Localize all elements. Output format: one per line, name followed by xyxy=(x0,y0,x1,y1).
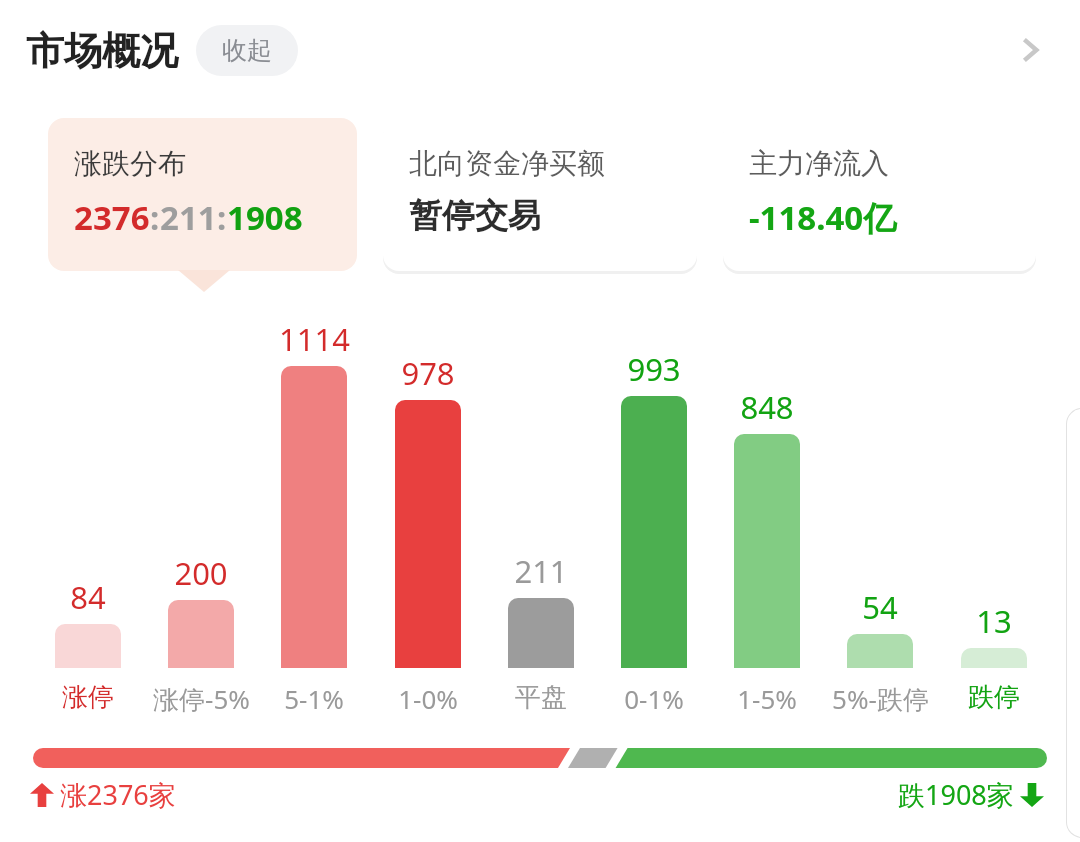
staticText: 1908 xyxy=(227,195,303,240)
button[interactable] xyxy=(847,634,913,668)
button[interactable]: 北向资金净买额 xyxy=(383,118,697,271)
staticText: 涨2376家 xyxy=(60,776,176,813)
staticText: 211 xyxy=(160,195,217,240)
staticText: 5%-跌停 xyxy=(832,681,929,717)
staticText: 主力净流入 xyxy=(749,146,889,181)
staticText: 跌1908家 xyxy=(898,776,1014,813)
button[interactable] xyxy=(621,396,687,668)
staticText: : xyxy=(217,195,227,240)
staticText: : xyxy=(150,195,160,240)
staticText: 收起 xyxy=(222,35,272,66)
button[interactable] xyxy=(395,400,461,668)
staticText: 848 xyxy=(740,386,794,428)
button[interactable] xyxy=(961,648,1027,668)
staticText: 市场概况 xyxy=(26,27,178,75)
staticText: 1114 xyxy=(279,318,350,360)
staticText: 5-1% xyxy=(284,681,344,716)
button[interactable] xyxy=(281,366,347,668)
button[interactable] xyxy=(168,600,234,668)
staticText: 涨跌分布 xyxy=(74,146,186,181)
staticText: 北向资金净买额 xyxy=(409,146,605,181)
button[interactable]: 跌1908家 xyxy=(898,776,1044,813)
button[interactable]: 主力净流入 xyxy=(723,118,1036,271)
staticText: 84 xyxy=(70,576,106,618)
button[interactable]: 涨2376家 xyxy=(30,776,176,813)
staticText: 993 xyxy=(627,348,681,390)
staticText: 54 xyxy=(862,586,898,628)
staticText: 平盘 xyxy=(515,681,567,714)
staticText: 2376 xyxy=(74,195,150,240)
button[interactable]: 涨跌分布 xyxy=(48,118,357,271)
staticText: 涨停-5% xyxy=(153,681,250,717)
staticText: 1-5% xyxy=(737,681,797,716)
staticText: 1-0% xyxy=(398,681,458,716)
button[interactable]: More xyxy=(1000,20,1060,80)
staticText: 跌停 xyxy=(968,681,1020,714)
button[interactable] xyxy=(55,624,121,668)
button[interactable]: 市场概况 xyxy=(26,25,298,76)
staticText: 暂停交易 xyxy=(409,195,541,237)
staticText: -118.40亿 xyxy=(749,195,897,240)
button[interactable]: 收起 xyxy=(196,25,298,76)
button[interactable] xyxy=(734,434,800,668)
staticText: 211 xyxy=(514,550,568,592)
staticText: 0-1% xyxy=(624,681,684,716)
staticText: 200 xyxy=(174,552,228,594)
staticText: 涨停 xyxy=(62,681,114,714)
staticText: 978 xyxy=(401,352,455,394)
staticText: 13 xyxy=(976,600,1012,642)
button[interactable] xyxy=(1066,408,1080,838)
button[interactable] xyxy=(508,598,574,668)
